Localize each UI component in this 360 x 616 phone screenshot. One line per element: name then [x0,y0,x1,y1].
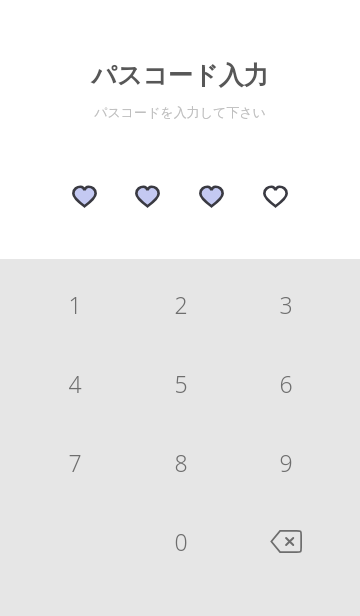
staticText: パスコードを入力して下さい [94,104,266,120]
button[interactable]: 0 [128,502,233,581]
button[interactable]: 4 [22,344,128,423]
staticText: 3 [279,289,293,320]
staticText: 9 [279,447,293,478]
button[interactable]: 7 [22,423,128,502]
staticText: パスコード入力 [91,60,269,91]
staticText: 0 [174,526,188,557]
button[interactable]: 5 [128,344,233,423]
button[interactable]: 1 [22,265,128,344]
staticText: 1 [68,289,82,320]
staticText: 6 [279,368,293,399]
staticText: 4 [68,368,82,399]
staticText: 2 [174,289,188,320]
button[interactable]: 3 [233,265,338,344]
button[interactable]: 6 [233,344,338,423]
button[interactable]: 9 [233,423,338,502]
staticText: 5 [174,368,188,399]
button[interactable]: 2 [128,265,233,344]
staticText: 8 [174,447,188,478]
button[interactable]: 8 [128,423,233,502]
button[interactable]: Backspace [233,502,338,581]
staticText: 7 [68,447,82,478]
